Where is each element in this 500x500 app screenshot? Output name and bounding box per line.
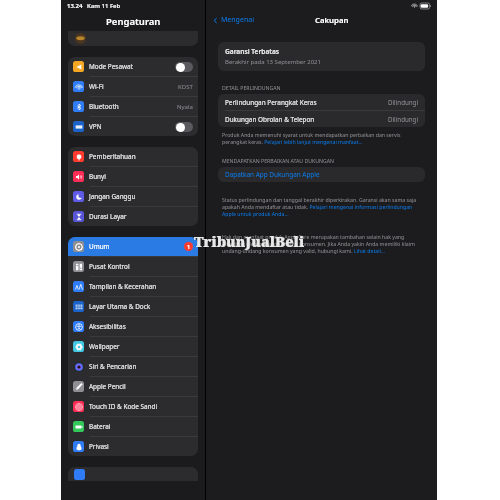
staticText: 1	[187, 243, 191, 250]
staticText: Pemberitahuan	[89, 152, 136, 161]
staticText: Bluetooth	[89, 102, 119, 111]
button[interactable]	[68, 467, 198, 481]
button[interactable]: Layar Utama & Dock	[68, 297, 198, 316]
staticText: Dilindungi	[388, 115, 418, 123]
button[interactable]: Aksesibilitas	[68, 317, 198, 336]
staticText: MENDAPATKAN PERBAIKAN ATAU DUKUNGAN	[222, 157, 335, 164]
staticText: Siri & Pencarian	[89, 362, 137, 371]
staticText: Layar Utama & Dock	[89, 302, 151, 311]
button[interactable]: VPN	[68, 117, 198, 136]
staticText: Berakhir pada 13 September 2021	[225, 58, 321, 66]
staticText: Umum	[89, 242, 110, 251]
button[interactable]: Wallpaper	[68, 337, 198, 356]
button[interactable]: Jangan Ganggu	[68, 187, 198, 206]
staticText: Wallpaper	[89, 342, 120, 351]
staticText: Pengaturan	[106, 15, 161, 28]
button[interactable]: Toggle VPN	[175, 122, 193, 132]
button[interactable]	[68, 31, 198, 46]
other: Back	[212, 17, 219, 24]
staticText: Dilindungi	[388, 98, 418, 106]
staticText: Baterai	[89, 422, 111, 431]
staticText: Bunyi	[89, 172, 106, 181]
staticText: 13.24	[67, 2, 83, 10]
staticText: DETAIL PERLINDUNGAN	[222, 84, 281, 91]
button[interactable]: Bluetooth	[68, 97, 198, 116]
button[interactable]: Umum	[68, 237, 198, 256]
button[interactable]: Durasi Layar	[68, 207, 198, 226]
staticText: Pusat Kontrol	[89, 262, 130, 271]
button[interactable]: Pusat Kontrol	[68, 257, 198, 276]
staticText: Dapatkan App Dukungan Apple	[225, 170, 320, 179]
staticText: Cakupan	[315, 15, 349, 26]
staticText: Dukungan Obrolan & Telepon	[225, 115, 315, 124]
button[interactable]: Pemberitahuan	[68, 147, 198, 166]
staticText: Status perlindungan dan tanggal berakhir…	[222, 196, 421, 217]
staticText: Apple Pencil	[89, 382, 126, 391]
button[interactable]: Tampilan & Kecerahan	[68, 277, 198, 296]
button[interactable]: Privasi	[68, 437, 198, 456]
button[interactable]: Apple Pencil	[68, 377, 198, 396]
staticText: Jangan Ganggu	[89, 192, 136, 201]
staticText: Tampilan & Kecerahan	[89, 282, 157, 291]
staticText: KOST	[178, 83, 193, 91]
staticText: Perlindungan Perangkat Keras	[225, 98, 317, 107]
button[interactable]: Wi-Fi	[68, 77, 198, 96]
staticText: Mode Pesawat	[89, 62, 133, 71]
button[interactable]: Dapatkan App Dukungan Apple	[218, 167, 425, 182]
staticText: Durasi Layar	[89, 212, 127, 221]
staticText: Aksesibilitas	[89, 322, 126, 331]
staticText: Garansi Terbatas	[225, 47, 280, 56]
staticText: Hak dan manfaat produk AppleCare merupak…	[222, 233, 421, 254]
button[interactable]: Dukungan Obrolan & Telepon	[218, 111, 425, 127]
staticText: Nyala	[177, 103, 193, 111]
staticText: Kam 11 Feb	[87, 2, 121, 10]
button[interactable]: Touch ID & Kode Sandi	[68, 397, 198, 416]
staticText: Wi-Fi	[89, 82, 104, 91]
button[interactable]: Back	[206, 15, 258, 25]
button[interactable]: Perlindungan Perangkat Keras	[218, 94, 425, 110]
button[interactable]: Mode Pesawat	[68, 57, 198, 76]
staticText: Privasi	[89, 442, 109, 451]
staticText: TribunJualBeli	[194, 232, 305, 251]
staticText: VPN	[89, 122, 102, 131]
staticText: Produk Anda memenuhi syarat untuk mendap…	[222, 131, 421, 145]
button[interactable]: Siri & Pencarian	[68, 357, 198, 376]
staticText: Mengenai	[221, 15, 254, 25]
button[interactable]: Baterai	[68, 417, 198, 436]
button[interactable]: Garansi Terbatas	[218, 42, 425, 71]
button[interactable]: Toggle Mode Pesawat	[175, 62, 193, 72]
staticText: Touch ID & Kode Sandi	[89, 402, 158, 411]
button[interactable]: Bunyi	[68, 167, 198, 186]
